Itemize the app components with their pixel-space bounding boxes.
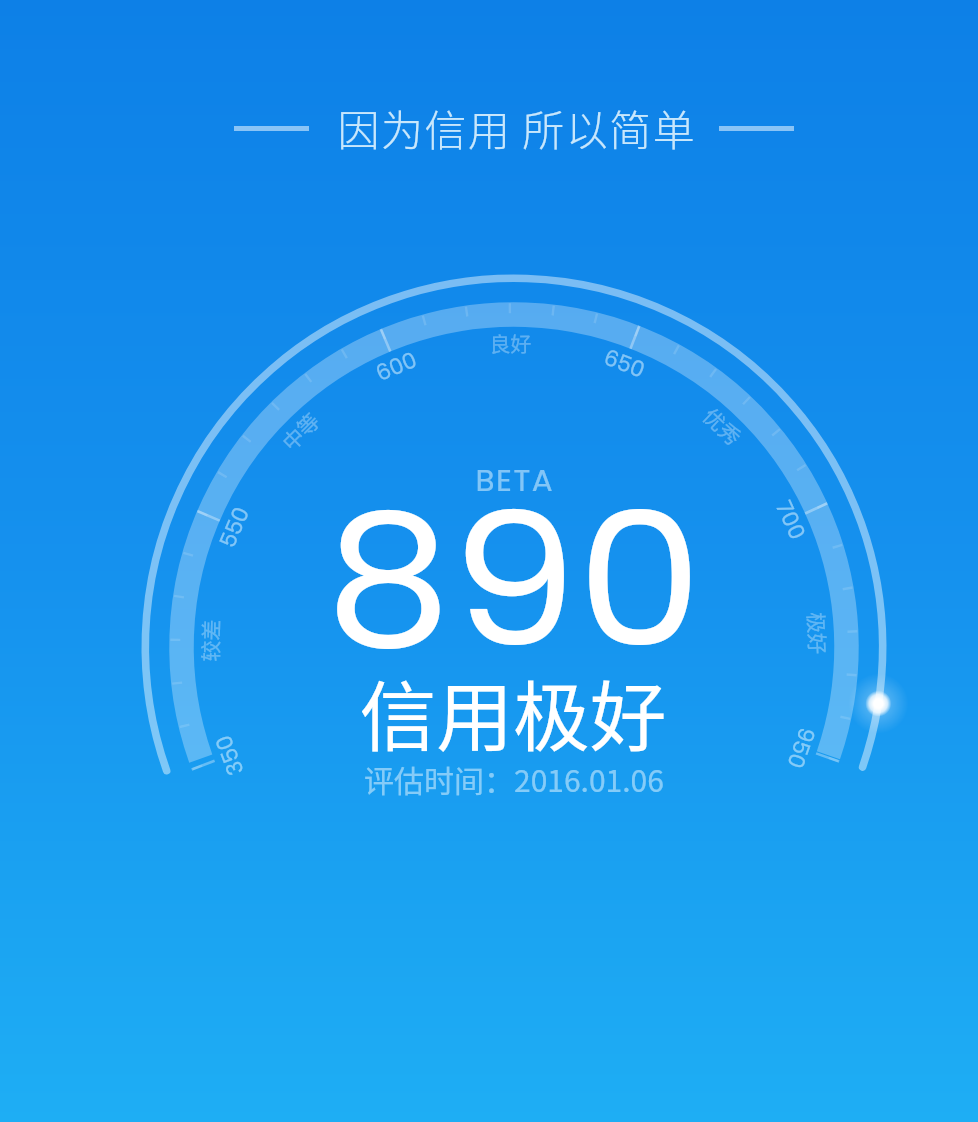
button[interactable]: 芝麻信用分 890 信用极好，查看评分详情 bbox=[146, 278, 882, 790]
button[interactable]: 因为信用 所以简单 bbox=[234, 100, 794, 158]
